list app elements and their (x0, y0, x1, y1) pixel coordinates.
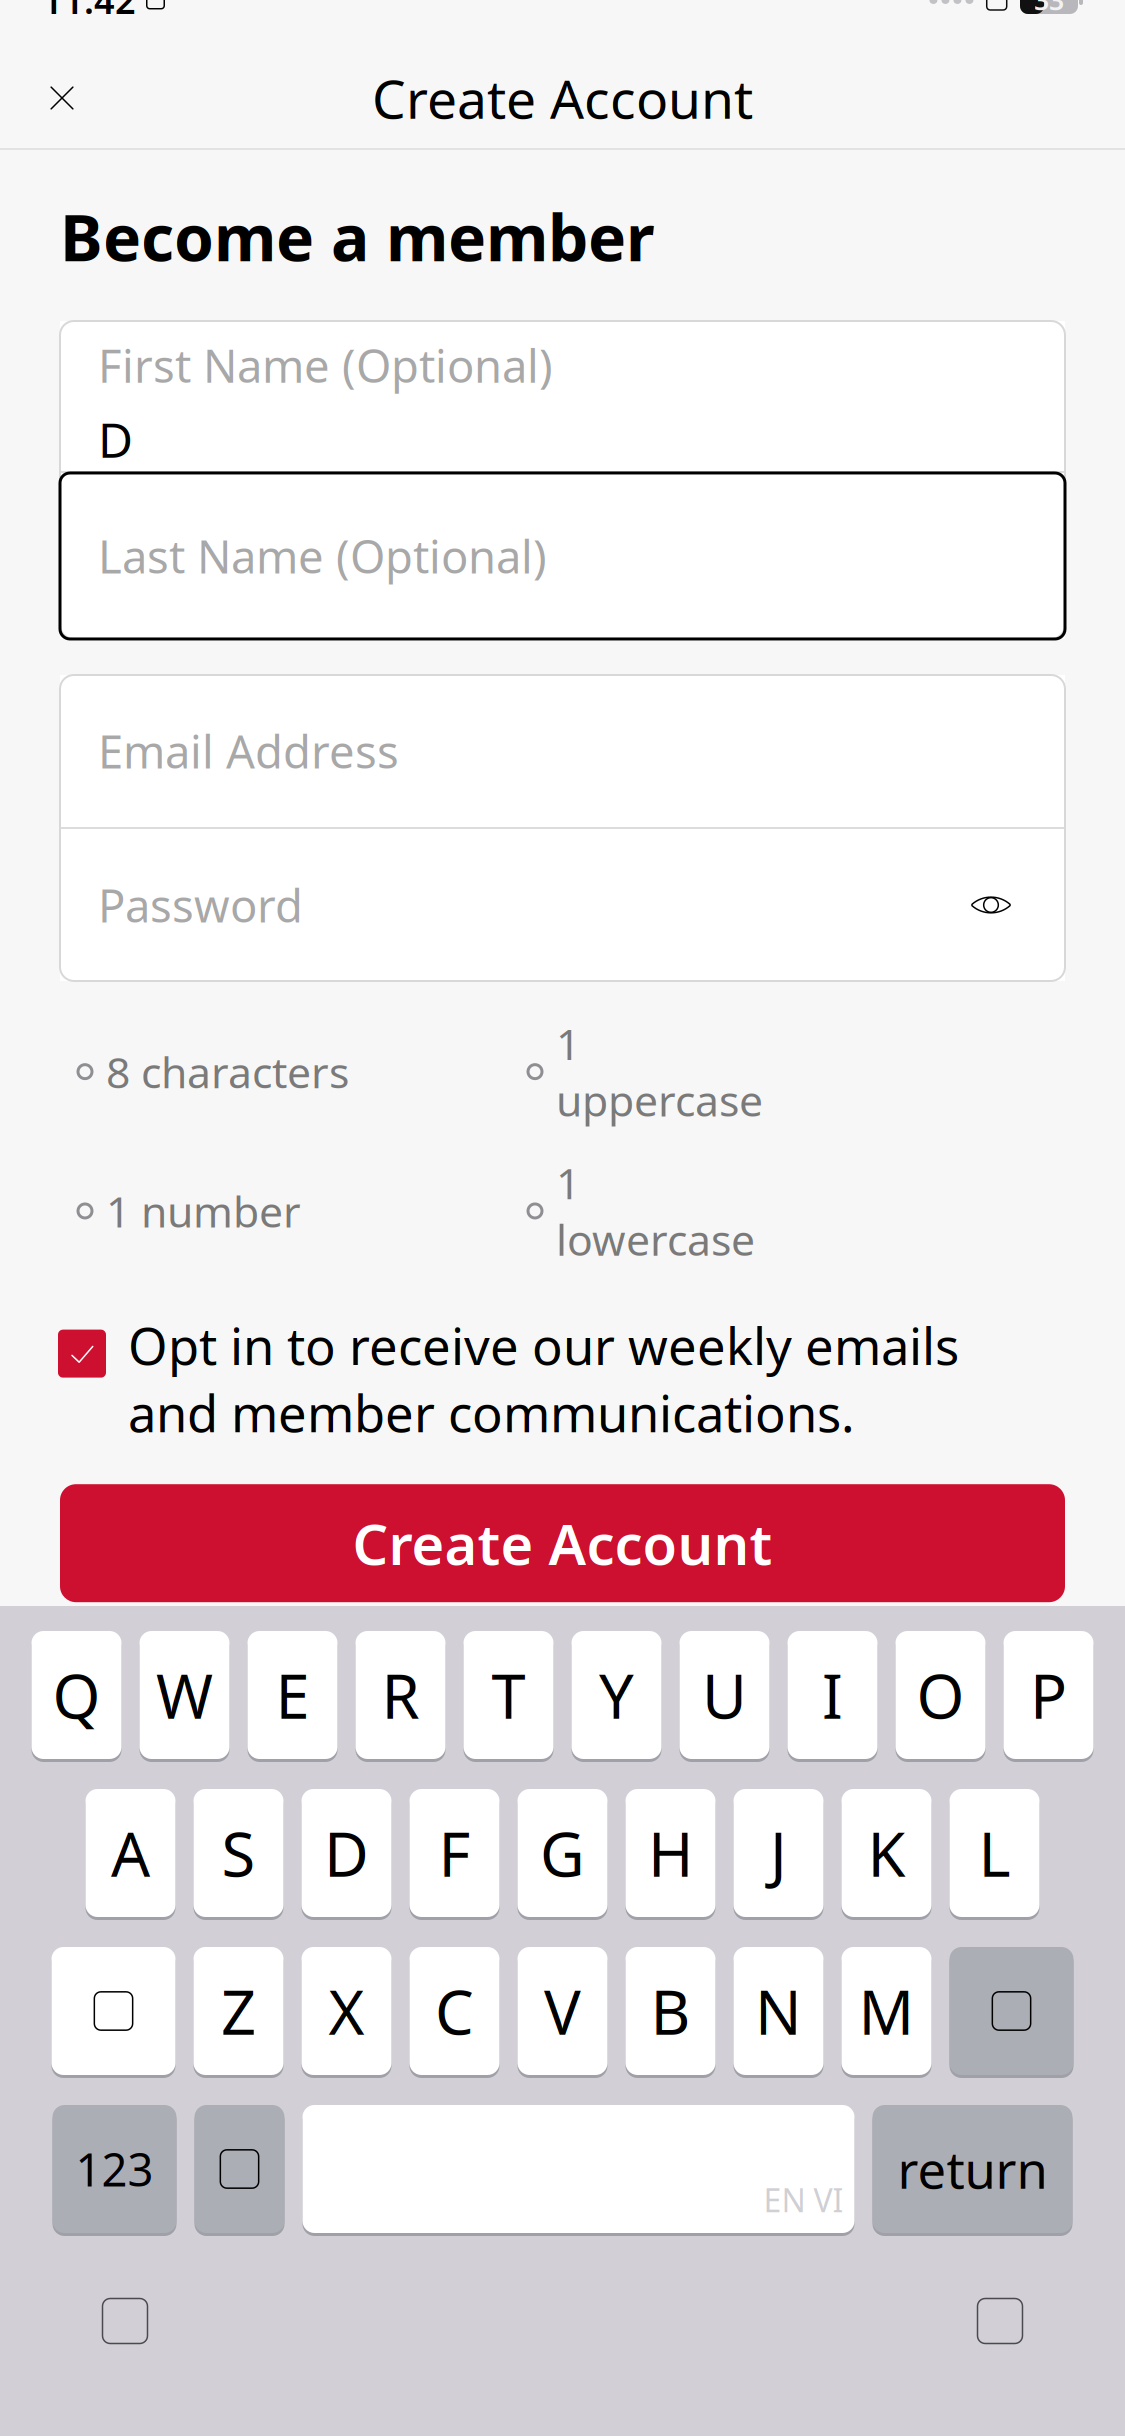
staticText: Y (599, 1654, 634, 1736)
staticText: EN VI (763, 2178, 843, 2221)
button[interactable]: return (872, 2102, 1072, 2236)
button[interactable]: Q (31, 1628, 121, 1762)
button[interactable]: Close (14, 50, 110, 146)
button[interactable]: U (679, 1628, 769, 1762)
staticText: T (491, 1654, 525, 1736)
staticText: Create Account (372, 63, 753, 133)
staticText: W (156, 1654, 213, 1736)
staticText: V (544, 1970, 581, 2052)
button[interactable]: Y (571, 1628, 661, 1762)
button[interactable]: L (949, 1786, 1039, 1920)
staticText: 8 characters (106, 1043, 349, 1100)
staticText: 11:42 (42, 0, 136, 24)
button[interactable]: Last Name (Optional) (60, 473, 1065, 639)
staticText: H (648, 1812, 693, 1894)
button[interactable]: G (517, 1786, 607, 1920)
staticText: I (822, 1654, 843, 1736)
staticText: Opt in to receive our weekly emails and … (128, 1312, 959, 1446)
button[interactable]: S (193, 1786, 283, 1920)
staticText: R (381, 1654, 419, 1736)
staticText: First Name (Optional) (98, 335, 553, 395)
staticText: J (770, 1812, 787, 1894)
button[interactable]: Email Address (60, 675, 1065, 827)
staticText: return (897, 2135, 1047, 2203)
button[interactable]: R (355, 1628, 445, 1762)
staticText: D (98, 407, 133, 471)
staticText: N (755, 1970, 802, 2052)
staticText: O (916, 1654, 964, 1736)
staticText: G (540, 1812, 585, 1894)
button[interactable]: E (247, 1628, 337, 1762)
staticText: B (650, 1970, 690, 2052)
button[interactable]: W (139, 1628, 229, 1762)
button[interactable]: P (1003, 1628, 1093, 1762)
staticText: 1 uppercase (556, 1015, 763, 1128)
staticText: Q (52, 1654, 100, 1736)
staticText: Z (221, 1970, 256, 2052)
button[interactable]: K (841, 1786, 931, 1920)
staticText: L (978, 1812, 1010, 1894)
staticText: 123 (75, 2139, 153, 2199)
button[interactable]: O (895, 1628, 985, 1762)
button[interactable]: X (301, 1944, 391, 2078)
button[interactable]: Next keyboard (70, 2266, 180, 2376)
button[interactable]: Create Account (0, 1484, 1125, 1602)
button[interactable]: Emoji (194, 2102, 284, 2236)
button[interactable]: M (841, 1944, 931, 2078)
staticText: U (702, 1654, 747, 1736)
button[interactable]: Z (193, 1944, 283, 2078)
button[interactable]: N (733, 1944, 823, 2078)
staticText: E (275, 1654, 309, 1736)
staticText: C (435, 1970, 474, 2052)
button[interactable]: A (85, 1786, 175, 1920)
button[interactable]: V (517, 1944, 607, 2078)
button[interactable]: D (301, 1786, 391, 1920)
button[interactable]: Opt in to receive our weekly emails and … (0, 1312, 1125, 1446)
button[interactable]: F (409, 1786, 499, 1920)
staticText: 1 lowercase (556, 1154, 755, 1268)
button[interactable]: C (409, 1944, 499, 2078)
staticText: S (221, 1812, 255, 1894)
button[interactable]: 123 (52, 2102, 176, 2236)
button[interactable]: Password (60, 829, 1065, 981)
staticText: A (111, 1812, 150, 1894)
staticText: Last Name (Optional) (98, 526, 547, 586)
button[interactable]: B (625, 1944, 715, 2078)
button[interactable]: H (625, 1786, 715, 1920)
button[interactable]: Shift (51, 1944, 175, 2078)
button[interactable]: Dictate (945, 2266, 1055, 2376)
staticText: 1 number (106, 1183, 301, 1239)
staticText: X (328, 1970, 364, 2052)
button[interactable]: First Name (Optional) (60, 321, 1065, 471)
staticText: D (324, 1812, 369, 1894)
staticText: Become a member (60, 194, 655, 279)
staticText: Email Address (98, 721, 399, 781)
staticText: F (438, 1812, 470, 1894)
button[interactable]: I (787, 1628, 877, 1762)
staticText: P (1030, 1654, 1067, 1736)
button[interactable]: space (302, 2102, 854, 2236)
staticText: 33 (1034, 0, 1064, 18)
staticText: M (858, 1970, 914, 2052)
button[interactable]: J (733, 1786, 823, 1920)
button[interactable]: T (463, 1628, 553, 1762)
button[interactable]: Delete (949, 1944, 1073, 2078)
staticText: K (867, 1812, 905, 1894)
staticText: Create Account (352, 1506, 772, 1580)
staticText: Password (98, 875, 303, 935)
